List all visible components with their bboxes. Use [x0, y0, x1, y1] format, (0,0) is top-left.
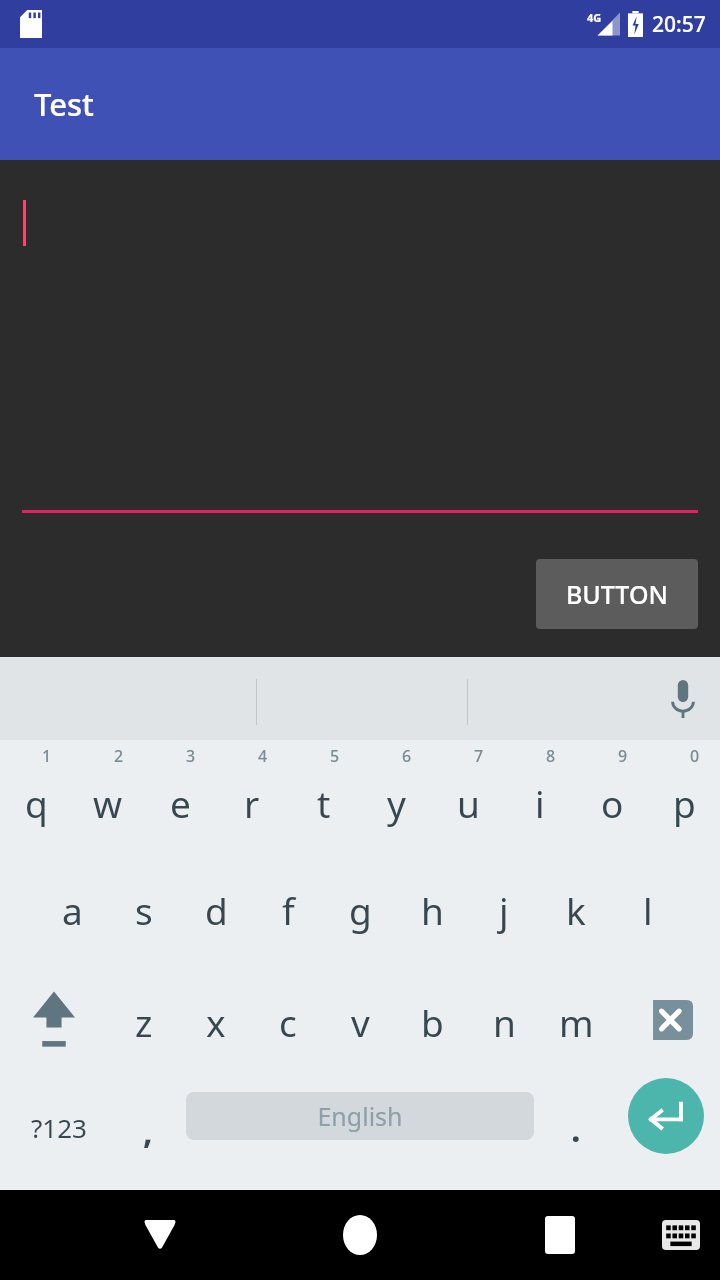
staticText: n — [493, 997, 516, 1047]
staticText: i — [535, 778, 545, 828]
staticText: q — [25, 778, 48, 828]
button[interactable]: Backspace — [612, 964, 720, 1076]
staticText: k — [566, 885, 586, 935]
staticText: m — [559, 997, 594, 1047]
button[interactable]: Shift — [0, 964, 108, 1076]
staticText: d — [205, 885, 228, 935]
button[interactable]: . — [546, 1076, 606, 1190]
button[interactable]: c — [252, 964, 324, 1076]
button[interactable]: v — [324, 964, 396, 1076]
button[interactable]: Back — [120, 1190, 200, 1280]
staticText: 1 — [42, 745, 52, 767]
staticText: u — [457, 778, 480, 828]
button[interactable]: 4 — [216, 740, 288, 852]
staticText: c — [279, 997, 297, 1047]
button[interactable]: n — [468, 964, 540, 1076]
button[interactable]: Voice input — [655, 676, 711, 722]
button[interactable]: x — [180, 964, 252, 1076]
staticText: 4 — [258, 745, 268, 767]
staticText: y — [387, 778, 406, 828]
button[interactable]: j — [468, 852, 540, 964]
staticText: 2 — [114, 745, 124, 767]
staticText: s — [135, 885, 153, 935]
staticText: 6 — [402, 745, 412, 767]
button[interactable]: , — [112, 1076, 184, 1190]
staticText: 9 — [618, 745, 628, 767]
button[interactable]: g — [324, 852, 396, 964]
staticText: t — [317, 778, 331, 828]
button[interactable]: 7 — [432, 740, 504, 852]
button[interactable]: 1 — [0, 740, 72, 852]
staticText: v — [351, 997, 370, 1047]
staticText: English — [317, 1099, 403, 1133]
staticText: 8 — [546, 745, 556, 767]
button[interactable]: z — [108, 964, 180, 1076]
button[interactable]: 2 — [72, 740, 144, 852]
staticText: Test — [34, 83, 94, 125]
staticText: l — [643, 885, 653, 935]
staticText: z — [135, 997, 153, 1047]
staticText: 20:57 — [652, 10, 706, 39]
staticText: h — [421, 885, 444, 935]
staticText: x — [206, 997, 226, 1047]
button[interactable]: f — [252, 852, 324, 964]
button[interactable]: k — [540, 852, 612, 964]
button[interactable]: Home — [320, 1190, 400, 1280]
staticText: e — [170, 778, 191, 828]
button[interactable]: 6 — [360, 740, 432, 852]
button[interactable]: 8 — [504, 740, 576, 852]
button[interactable]: m — [540, 964, 612, 1076]
staticText: BUTTON — [566, 577, 668, 611]
staticText: r — [244, 778, 260, 828]
staticText: 5 — [330, 745, 340, 767]
staticText: ?123 — [31, 1110, 87, 1145]
button[interactable]: 9 — [576, 740, 648, 852]
button[interactable]: ?123 — [14, 1076, 104, 1190]
staticText: j — [499, 885, 509, 935]
button[interactable]: 3 — [144, 740, 216, 852]
staticText: , — [143, 1108, 153, 1154]
button[interactable]: s — [108, 852, 180, 964]
staticText: 7 — [474, 745, 484, 767]
button[interactable]: h — [396, 852, 468, 964]
staticText: 4G — [587, 10, 602, 25]
button[interactable]: Hide keyboard — [648, 1190, 714, 1280]
staticText: b — [421, 997, 444, 1047]
staticText: 3 — [186, 745, 196, 767]
staticText: a — [62, 885, 83, 935]
button[interactable]: d — [180, 852, 252, 964]
button[interactable]: Recent apps — [520, 1190, 600, 1280]
button[interactable]: b — [396, 964, 468, 1076]
staticText: p — [673, 778, 696, 828]
button[interactable]: Enter — [628, 1078, 704, 1154]
staticText: g — [349, 885, 372, 935]
button[interactable]: 0 — [648, 740, 720, 852]
staticText: f — [282, 885, 295, 935]
staticText: 0 — [690, 745, 700, 767]
button[interactable]: 5 — [288, 740, 360, 852]
button[interactable]: a — [36, 852, 108, 964]
staticText: . — [571, 1106, 581, 1152]
button[interactable]: BUTTON — [536, 559, 698, 629]
button[interactable]: l — [612, 852, 684, 964]
staticText: w — [93, 778, 123, 828]
staticText: o — [601, 778, 624, 828]
button[interactable]: English — [186, 1092, 534, 1140]
